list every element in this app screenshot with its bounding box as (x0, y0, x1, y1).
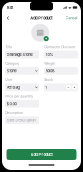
staticText: Title (5, 45, 12, 49)
staticText: Per Bag (7, 85, 20, 90)
button[interactable]: Decrease stock (66, 85, 71, 90)
staticText: Stone (7, 68, 17, 73)
button[interactable]: Increase stock (72, 85, 77, 90)
staticText: 50lbs (46, 68, 55, 73)
staticText: Add Product (30, 152, 52, 157)
staticText: Contractor Discount (44, 45, 75, 49)
staticText: Weight (44, 61, 55, 65)
button[interactable]: Add photo (31, 24, 52, 44)
button[interactable]: Cancel (65, 14, 77, 21)
staticText: 1 (45, 85, 47, 90)
staticText: Cancel (65, 16, 77, 20)
staticText: Enter Description (7, 118, 36, 122)
staticText: Unit (5, 78, 12, 82)
button[interactable]: Add Product (6, 149, 76, 160)
staticText: Price per quantity (5, 94, 33, 98)
staticText: Stock (44, 78, 53, 82)
staticText: $0.00 (7, 101, 17, 106)
staticText: 10% (46, 52, 54, 57)
staticText: Drainage Stone (7, 52, 33, 57)
staticText: Category (5, 61, 19, 65)
button[interactable]: Back (5, 14, 11, 21)
staticText: Add Product (30, 16, 52, 20)
staticText: 9:41 (6, 5, 13, 10)
staticText: Description (5, 111, 23, 115)
